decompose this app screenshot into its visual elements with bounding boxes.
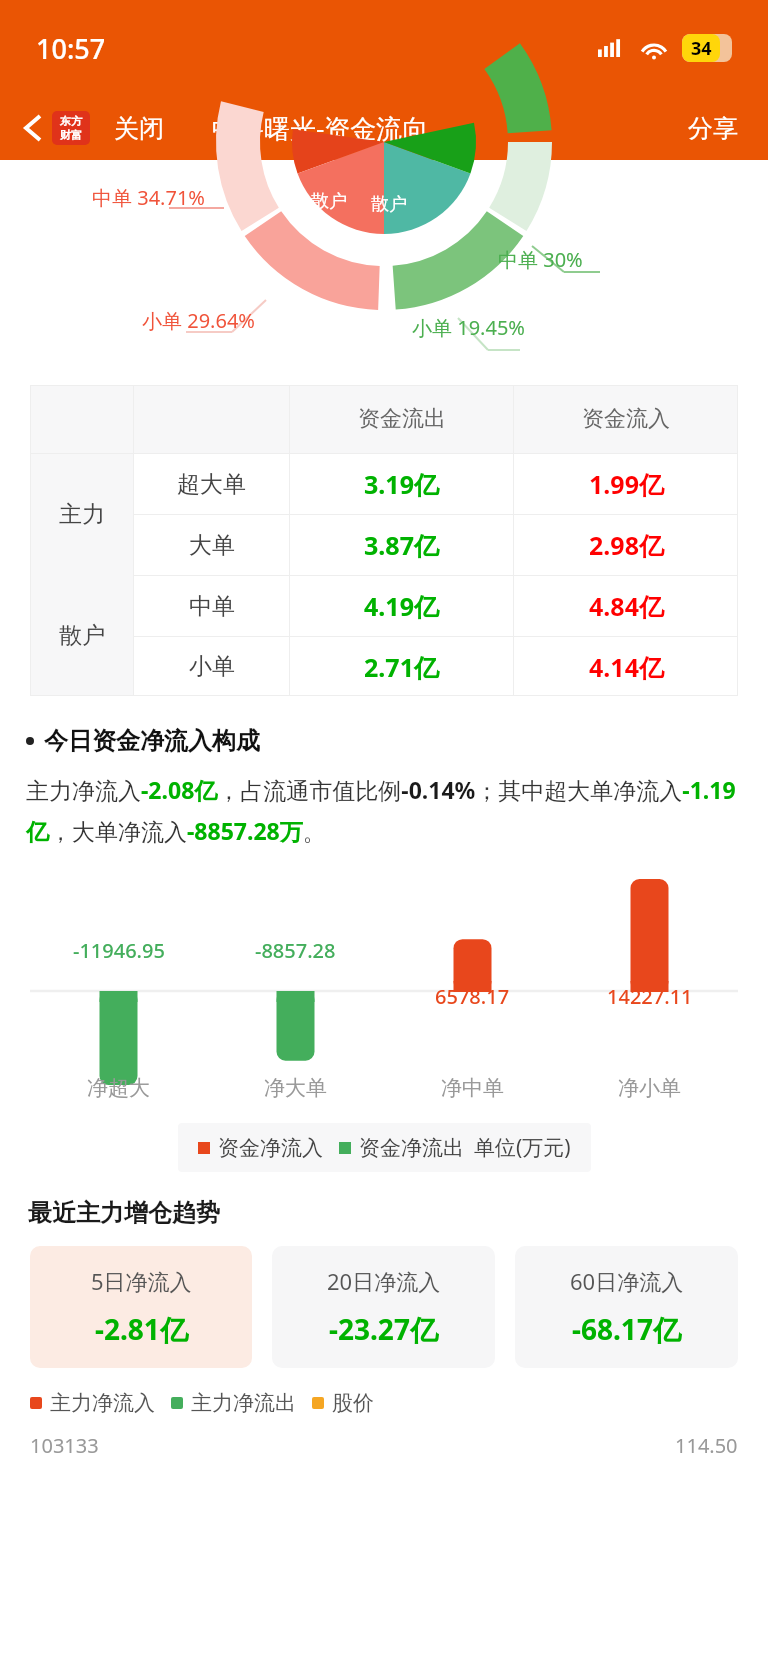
staticText: 资金净流出 — [359, 1135, 464, 1161]
staticText: 资金流出 — [358, 405, 446, 433]
button[interactable]: 关闭 — [108, 107, 170, 150]
staticText: 散户 — [311, 190, 347, 213]
staticText: 中单 — [189, 592, 235, 621]
staticText: 单位(万元) — [474, 1133, 571, 1162]
staticText: 散户 — [59, 621, 105, 650]
button[interactable]: 分享 — [682, 107, 744, 150]
button[interactable]: 60日净流入 — [515, 1246, 738, 1368]
staticText: 4.84亿 — [589, 589, 664, 623]
staticText: 103133 — [30, 1432, 99, 1459]
staticText: 主力净流出 — [191, 1390, 296, 1416]
staticText: 4.14亿 — [589, 650, 664, 684]
staticText: 小单 — [189, 652, 235, 681]
staticText: 资金流入 — [582, 405, 670, 433]
staticText: 财富 — [60, 128, 82, 142]
staticText: 关闭 — [114, 113, 164, 144]
staticText: 小单 19.45% — [412, 314, 525, 341]
button[interactable]: 20日净流入 — [272, 1246, 495, 1368]
staticText: -2.81亿 — [95, 1310, 188, 1348]
staticText: 资金净流入 — [218, 1135, 323, 1161]
staticText: 3.19亿 — [364, 467, 439, 501]
staticText: 净小单 — [618, 1075, 681, 1101]
staticText: 60日净流入 — [570, 1266, 684, 1296]
staticText: 净大单 — [264, 1075, 327, 1101]
staticText: -8857.28 — [255, 937, 336, 964]
staticText: 超大单 — [177, 470, 246, 499]
staticText: 中单 30% — [498, 246, 583, 273]
staticText: 20日净流入 — [327, 1266, 441, 1296]
staticText: 散户 — [371, 193, 407, 216]
staticText: 分享 — [688, 113, 738, 144]
staticText: 净中单 — [441, 1075, 504, 1101]
staticText: 14227.11 — [607, 983, 693, 1010]
staticText: 小单 29.64% — [142, 307, 255, 334]
staticText: 1.99亿 — [589, 467, 664, 501]
button[interactable]: East Money — [52, 111, 90, 145]
staticText: 主力 — [59, 500, 105, 529]
staticText: 中单 34.71% — [92, 184, 205, 211]
staticText: 4.19亿 — [364, 589, 439, 623]
staticText: 2.71亿 — [364, 650, 439, 684]
staticText: -68.17亿 — [572, 1310, 681, 1348]
staticText: 主力净流入 — [50, 1390, 155, 1416]
staticText: 2.98亿 — [589, 528, 664, 562]
staticText: 今日资金净流入构成 — [44, 726, 260, 756]
staticText: -11946.95 — [73, 937, 165, 964]
staticText: -23.27亿 — [329, 1310, 438, 1348]
staticText: 5日净流入 — [91, 1266, 192, 1296]
button[interactable]: Back — [14, 109, 52, 147]
staticText: 东方 — [60, 114, 82, 128]
staticText: 3.87亿 — [364, 528, 439, 562]
staticText: 中科曙光-资金流向 — [212, 110, 429, 146]
staticText: 大单 — [189, 531, 235, 560]
staticText: 6578.17 — [435, 983, 510, 1010]
staticText: 股价 — [332, 1390, 374, 1416]
staticText: 主力净流入-2.08亿，占流通市值比例-0.14%；其中超大单净流入-1.19亿… — [26, 774, 742, 847]
staticText: 114.50 — [675, 1432, 738, 1459]
staticText: 10:57 — [36, 30, 106, 67]
staticText: 34 — [691, 36, 712, 61]
staticText: 净超大 — [87, 1075, 150, 1101]
staticText: 最近主力增仓趋势 — [28, 1198, 220, 1228]
button[interactable]: 5日净流入 — [30, 1246, 252, 1368]
